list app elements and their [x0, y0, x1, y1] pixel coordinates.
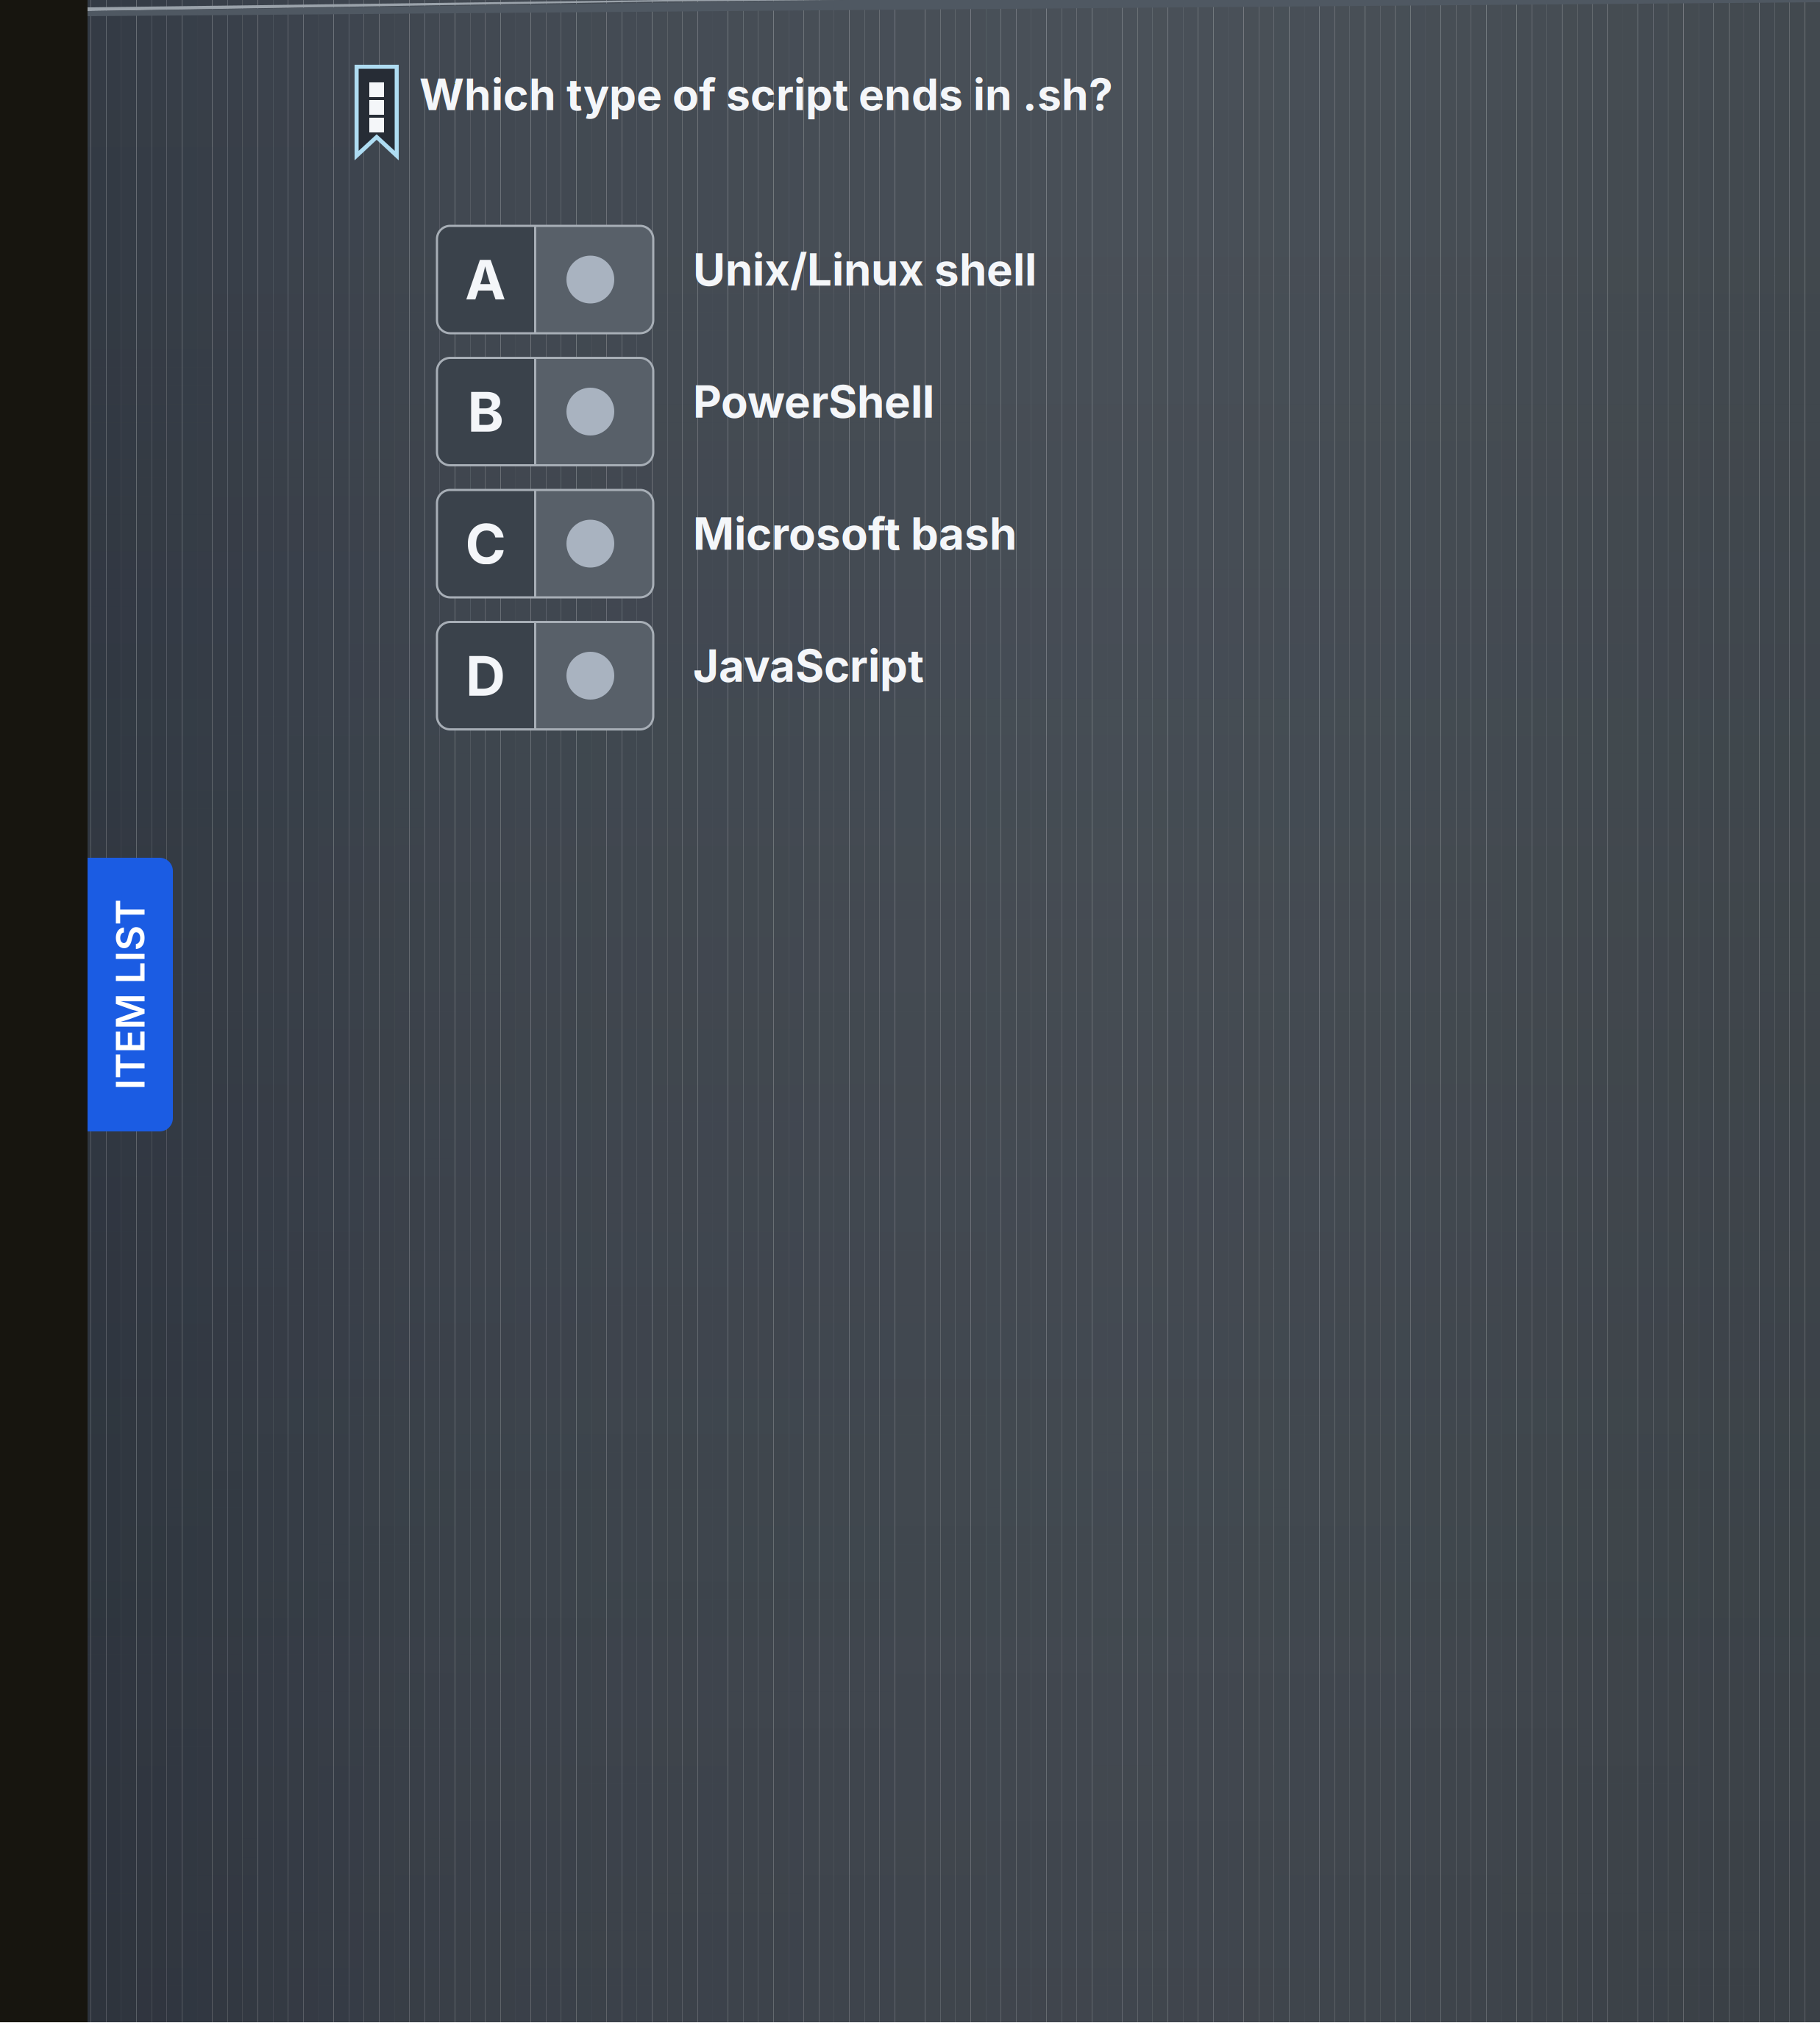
- button[interactable]: ITEM LIST: [58, 858, 173, 1131]
- staticText: C: [465, 510, 506, 577]
- staticText: Unix/Linux shell: [693, 243, 1037, 296]
- staticText: PowerShell: [693, 375, 934, 428]
- button[interactable]: D: [437, 622, 924, 729]
- button[interactable]: A: [437, 226, 1037, 333]
- staticText: A: [465, 246, 506, 313]
- staticText: Microsoft bash: [693, 507, 1017, 560]
- staticText: Which type of script ends in .sh?: [419, 68, 1113, 121]
- button[interactable]: C: [437, 490, 1017, 597]
- staticText: ITEM LIST: [35, 971, 225, 1018]
- staticText: D: [466, 642, 505, 709]
- staticText: JavaScript: [693, 639, 924, 692]
- staticText: B: [468, 378, 504, 445]
- button[interactable]: B: [437, 358, 934, 465]
